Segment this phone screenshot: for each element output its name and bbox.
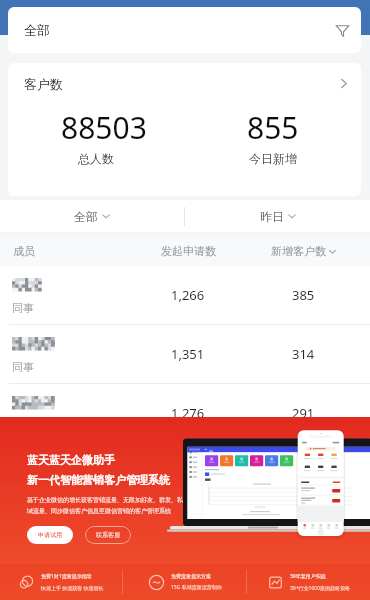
button[interactable]: 30年老用户实战 — [247, 564, 370, 600]
button[interactable]: 联系客服 — [85, 526, 131, 544]
staticText: 联系客服 — [96, 531, 120, 539]
staticText: 855 — [247, 107, 299, 148]
staticText: 蓝天蓝天企微助手 — [27, 453, 115, 467]
staticText: 基于企业微信的增长获客营销流量、无限加好友、群发、私 域流量、同步微信客户信息至… — [27, 496, 183, 515]
staticText: 申请试用 — [38, 531, 62, 539]
staticText: 发起申请数 — [161, 244, 216, 258]
button[interactable]: 855 — [184, 104, 361, 196]
staticText: 88503 — [61, 107, 147, 148]
staticText: 1,266 — [171, 286, 205, 304]
button[interactable]: 昨日 — [185, 200, 370, 232]
staticText: 1,276 — [171, 404, 205, 422]
staticText: 15G 私域流量运营制作 — [171, 584, 222, 591]
staticText: 成员 — [13, 244, 35, 258]
staticText: 全部 — [74, 209, 98, 224]
staticText: 314 — [292, 345, 315, 363]
button[interactable]: 免费1对1流量提示指导 — [0, 564, 122, 600]
staticText: 总人数 — [78, 151, 114, 166]
button[interactable]: Filter — [331, 19, 353, 41]
staticText: 昨日 — [260, 209, 284, 224]
staticText: 客户数 — [24, 76, 63, 92]
button[interactable]: 免费流量提示方案 — [123, 564, 246, 600]
staticText: 免费流量提示方案 — [171, 573, 211, 579]
staticText: 385 — [292, 286, 315, 304]
button[interactable]: 同事 — [0, 384, 370, 442]
button[interactable]: 申请试用 — [27, 526, 73, 544]
staticText: 快速上手 快速获客 快速增长 — [41, 585, 104, 592]
button[interactable]: 同事 — [0, 266, 370, 324]
staticText: 新增客户数 — [271, 244, 326, 258]
button[interactable]: 全部 — [8, 7, 361, 53]
staticText: 免费1对1流量提示指导 — [41, 573, 92, 580]
staticText: 30+行业1000案例战略策略 — [290, 585, 351, 592]
button[interactable]: 同事 — [0, 325, 370, 383]
staticText: 全部 — [24, 22, 50, 38]
staticText: 同事 — [12, 360, 34, 374]
staticText: 1,351 — [171, 345, 205, 363]
button[interactable]: 全部 — [0, 200, 184, 232]
button[interactable]: 88503 — [8, 104, 184, 196]
button[interactable]: 客户数 — [8, 63, 361, 104]
staticText: 同事 — [12, 301, 34, 315]
staticText: 今日新增 — [249, 151, 297, 166]
button[interactable]: 新增客户数 — [271, 244, 336, 258]
staticText: 30年老用户实战 — [290, 573, 326, 580]
staticText: 291 — [292, 404, 315, 422]
staticText: 新一代智能营销客户管理系统 — [27, 473, 170, 487]
